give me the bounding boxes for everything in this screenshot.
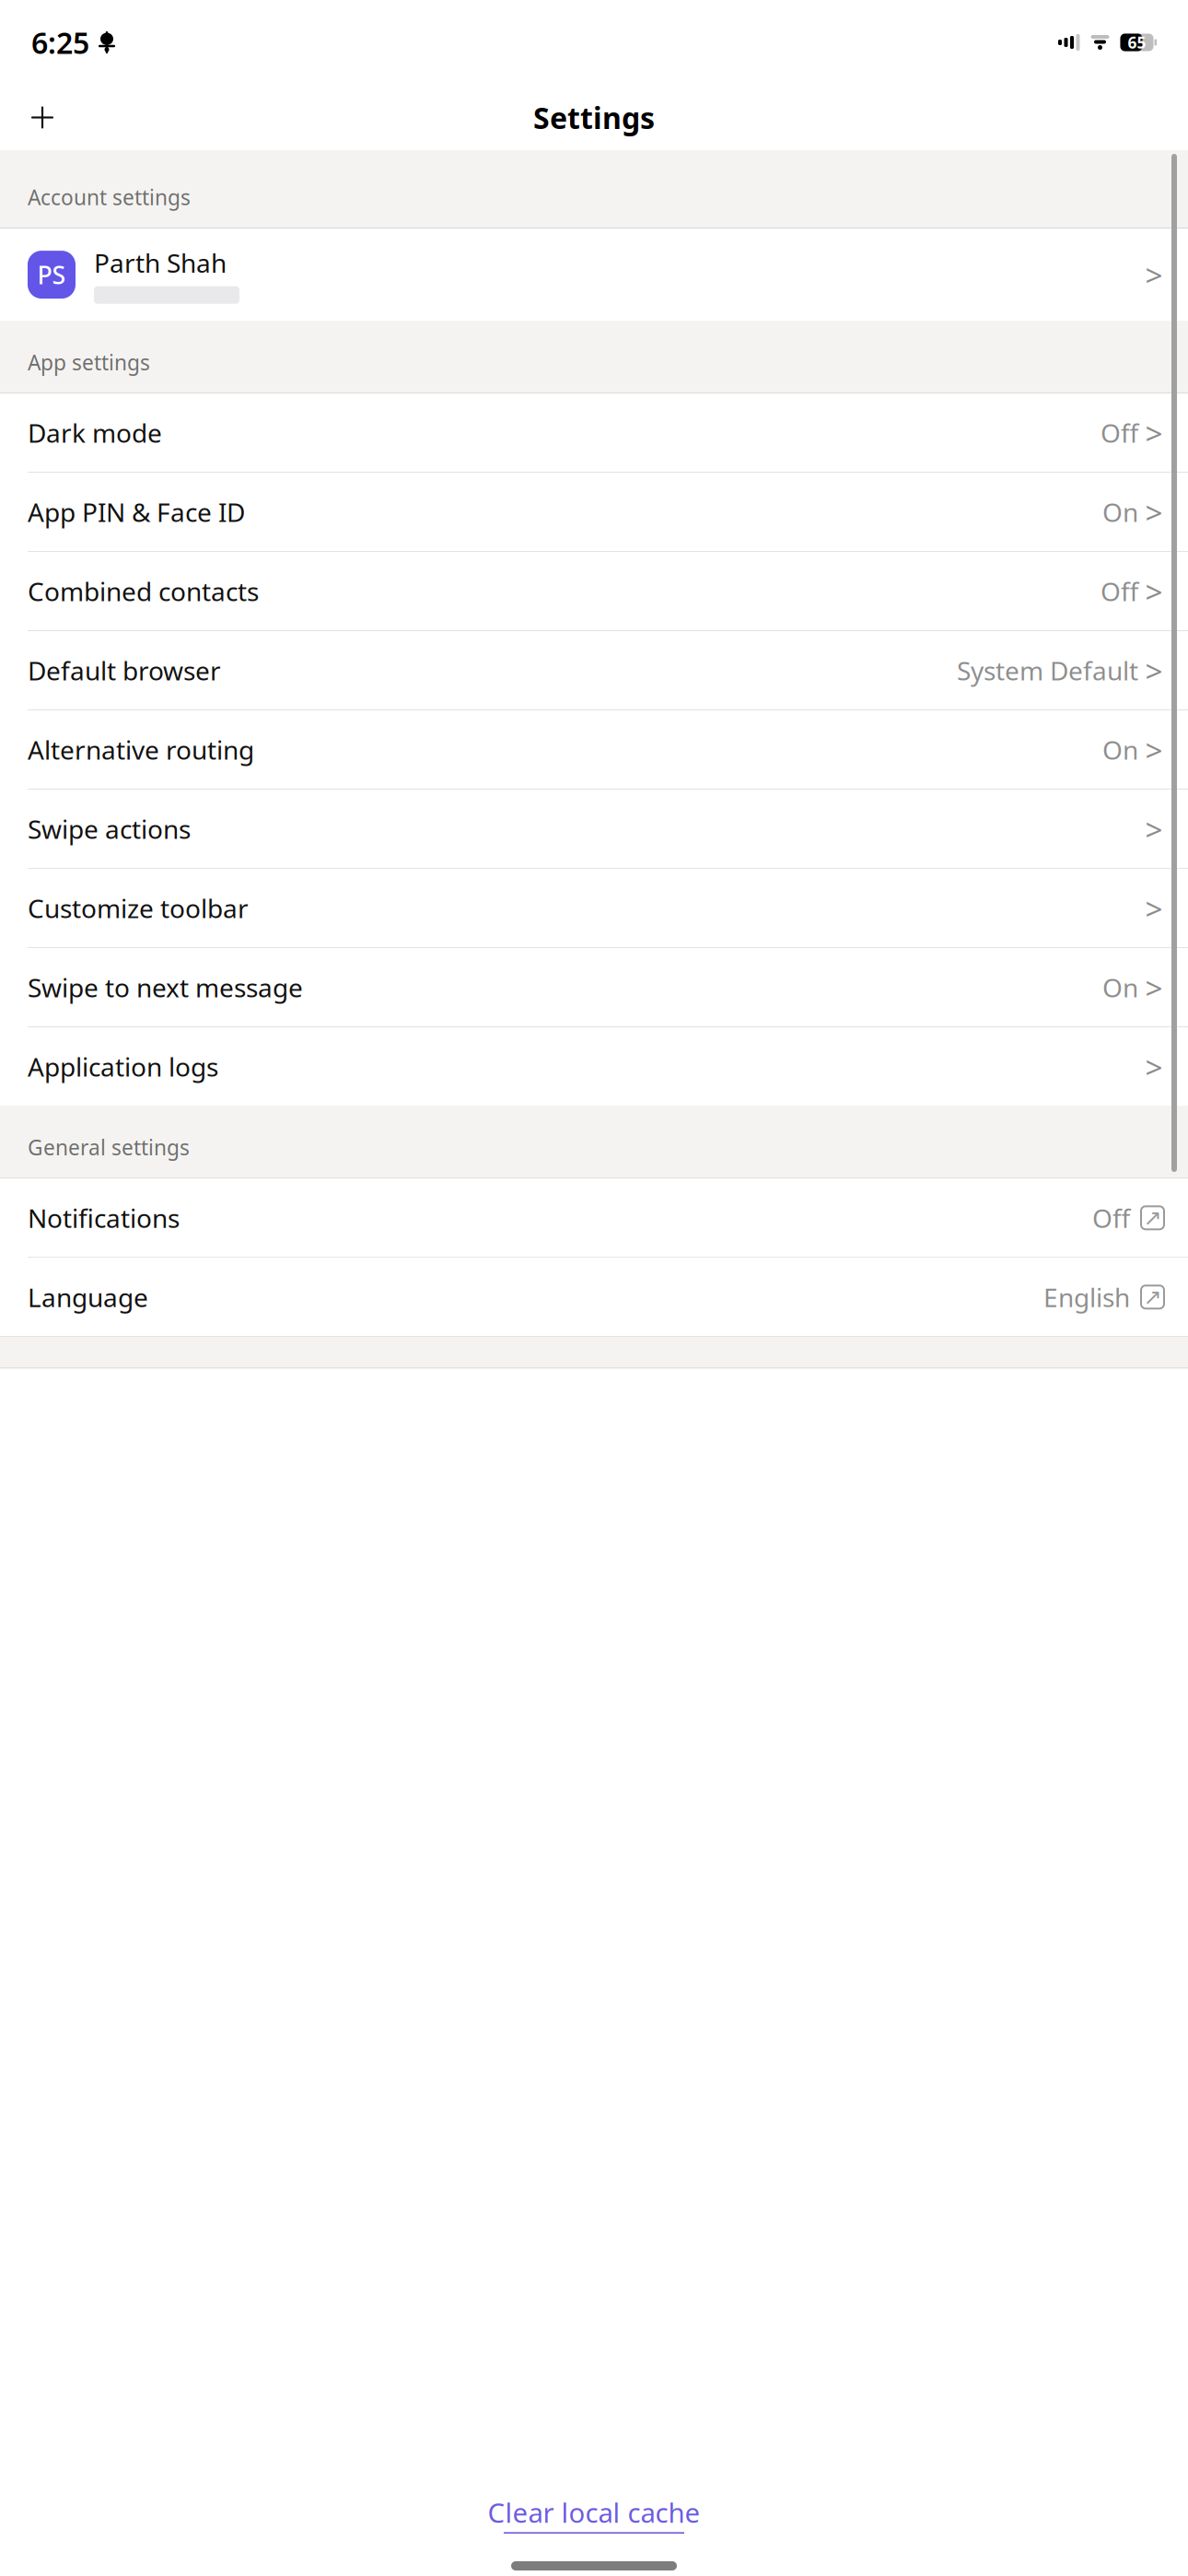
staticText: App settings xyxy=(28,348,150,376)
staticText: > xyxy=(1145,650,1163,691)
button[interactable]: Close xyxy=(17,92,68,143)
staticText: App PIN & Face ID xyxy=(28,495,245,529)
button[interactable]: Notifications xyxy=(0,1179,1188,1257)
staticText: > xyxy=(1145,412,1163,453)
staticText: > xyxy=(1145,492,1163,532)
staticText: Swipe actions xyxy=(28,812,191,846)
staticText: Alternative routing xyxy=(28,733,254,767)
staticText: Combined contacts xyxy=(28,574,259,608)
staticText: > xyxy=(1145,254,1163,295)
button[interactable]: Language xyxy=(0,1258,1188,1336)
button[interactable]: Dark mode xyxy=(0,394,1188,472)
button[interactable]: Customize toolbar xyxy=(0,869,1188,947)
staticText: > xyxy=(1145,888,1163,929)
staticText: Settings xyxy=(533,98,655,137)
staticText: > xyxy=(1145,571,1163,612)
staticText: Default browser xyxy=(28,653,221,688)
staticText: Swipe to next message xyxy=(28,970,303,1005)
staticText: Clear local cache xyxy=(488,2494,700,2530)
button[interactable]: Application logs xyxy=(0,1027,1188,1106)
staticText: > xyxy=(1145,729,1163,770)
staticText: System Default xyxy=(957,653,1138,688)
staticText: Application logs xyxy=(28,1049,218,1084)
staticText: Off xyxy=(1101,574,1138,608)
staticText: ↗ xyxy=(1143,1284,1162,1310)
button[interactable]: Swipe to next message xyxy=(0,948,1188,1027)
staticText: PS xyxy=(37,258,66,291)
staticText: On xyxy=(1102,495,1138,529)
staticText: ↗ xyxy=(1143,1205,1162,1230)
staticText: 6:25 xyxy=(31,23,89,62)
staticText: General settings xyxy=(28,1133,190,1161)
button[interactable]: App PIN & Face ID xyxy=(0,473,1188,551)
staticText: On xyxy=(1102,733,1138,767)
staticText: English xyxy=(1043,1280,1130,1314)
button[interactable]: Clear local cache xyxy=(0,2481,1188,2547)
button[interactable]: Swipe actions xyxy=(0,790,1188,868)
staticText: > xyxy=(1145,1046,1163,1087)
button[interactable]: Alternative routing xyxy=(0,711,1188,789)
button[interactable]: Default browser xyxy=(0,631,1188,710)
staticText: Notifications xyxy=(28,1201,180,1235)
button[interactable]: PS xyxy=(0,229,1188,321)
staticText: > xyxy=(1145,809,1163,849)
staticText: Language xyxy=(28,1280,148,1314)
staticText: Dark mode xyxy=(28,416,162,450)
staticText: Off xyxy=(1092,1201,1130,1235)
staticText: > xyxy=(1145,967,1163,1008)
staticText: Parth Shah xyxy=(94,246,227,280)
staticText: Off xyxy=(1101,416,1138,450)
staticText: 65 xyxy=(1128,32,1146,53)
staticText: On xyxy=(1102,970,1138,1005)
button[interactable]: Combined contacts xyxy=(0,552,1188,630)
staticText: Customize toolbar xyxy=(28,891,249,925)
staticText: Account settings xyxy=(28,183,191,211)
